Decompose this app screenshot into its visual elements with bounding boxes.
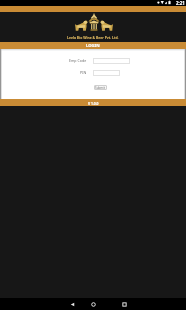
button[interactable]: Home: [87, 298, 99, 310]
staticText: Emp Code: [69, 58, 87, 63]
button[interactable]: Submit: [94, 85, 107, 90]
button[interactable]: Recent apps: [118, 298, 130, 310]
staticText: 2:21: [176, 0, 185, 6]
button[interactable]: [93, 58, 130, 64]
button[interactable]: LOGIN: [0, 42, 186, 49]
staticText: V 1.0.0: [88, 101, 99, 105]
staticText: PIN: [80, 70, 87, 75]
button[interactable]: [93, 70, 120, 76]
staticText: Submit: [95, 86, 106, 90]
staticText: LOGIN: [86, 43, 100, 49]
button[interactable]: Back: [66, 298, 78, 310]
staticText: Leela Bio Wine & Beer Pvt. Ltd.: [67, 35, 119, 40]
